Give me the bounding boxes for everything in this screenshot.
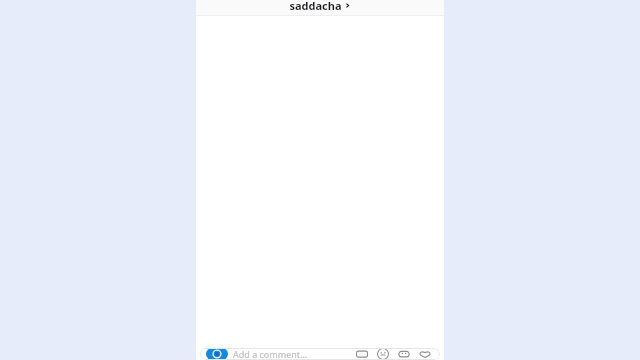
staticText: Add a comment...	[233, 348, 354, 360]
button[interactable]: saddacha	[196, 0, 444, 15]
button[interactable]: Emoji	[396, 348, 412, 360]
button[interactable]: Like	[417, 348, 433, 360]
button[interactable]: Sticker	[375, 348, 391, 360]
button[interactable]: Your profile photo	[200, 348, 440, 360]
button[interactable]: Gif	[354, 348, 370, 360]
staticText: saddacha	[289, 0, 342, 13]
button[interactable]: Your profile photo	[206, 348, 228, 360]
